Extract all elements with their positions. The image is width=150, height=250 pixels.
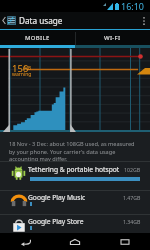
staticText: WI-FI [104,34,121,42]
button[interactable]: Home [50,233,100,250]
staticText: 102GB [124,166,141,173]
staticText: 1.47GB [123,194,141,201]
staticText: Tethering & portable hotspot [28,165,120,174]
staticText: warning [12,71,32,78]
staticText: Data usage [19,15,63,26]
staticText: 16:10 [121,0,145,12]
staticText: Google Play Music [28,193,86,202]
staticText: MB [24,65,32,71]
staticText: 156 [12,62,29,75]
button[interactable]: WI-FI [75,30,150,48]
other: Navigate up [2,17,6,24]
button[interactable]: More options [137,12,150,29]
staticText: 18 Nov - 3 Dec: about 108GB used, as mea… [9,140,138,162]
button[interactable]: Tethering & portable hotspot [0,161,150,190]
button[interactable]: Recent apps [100,233,150,250]
button[interactable]: MOBILE [0,30,75,48]
button[interactable]: Google Play Music [0,190,150,214]
staticText: Google Play Store [28,217,84,226]
button[interactable]: Back [0,233,50,250]
button[interactable]: Google Play Store [0,214,150,233]
staticText: 1.34GB [123,218,141,225]
staticText: MOBILE [25,34,50,42]
button[interactable]: Navigate up [0,12,150,29]
